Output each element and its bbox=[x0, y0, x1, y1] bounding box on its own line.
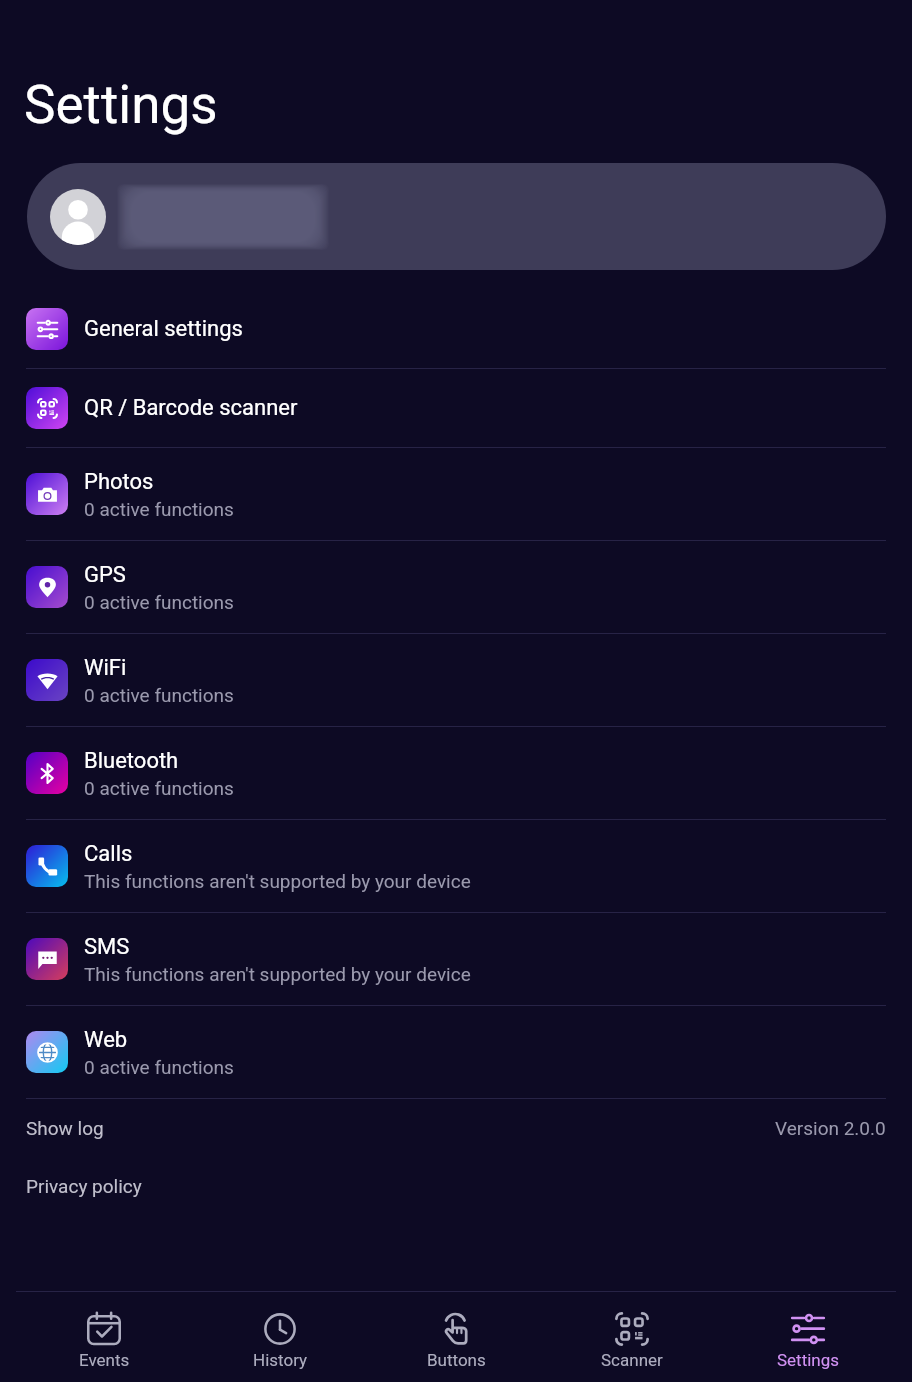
button[interactable]: GPS bbox=[0, 541, 912, 633]
staticText: Show log bbox=[26, 1117, 104, 1139]
staticText: Privacy policy bbox=[26, 1175, 142, 1197]
staticText: Web bbox=[84, 1027, 128, 1053]
button[interactable]: General settings bbox=[0, 290, 912, 368]
staticText: 0 active functions bbox=[84, 684, 234, 706]
staticText: Events bbox=[79, 1350, 130, 1370]
button[interactable]: History bbox=[192, 1292, 368, 1382]
staticText: General settings bbox=[84, 316, 243, 342]
button[interactable] bbox=[27, 163, 886, 270]
staticText: SMS bbox=[84, 934, 130, 960]
staticText: Version 2.0.0 bbox=[775, 1117, 886, 1139]
button[interactable]: Photos bbox=[0, 448, 912, 540]
staticText: GPS bbox=[84, 562, 126, 588]
button[interactable]: Privacy policy bbox=[26, 1175, 142, 1197]
button[interactable]: QR / Barcode scanner bbox=[0, 369, 912, 447]
button[interactable]: Buttons bbox=[368, 1292, 544, 1382]
staticText: Settings bbox=[777, 1350, 840, 1370]
staticText: Photos bbox=[84, 469, 154, 495]
button[interactable]: Settings bbox=[720, 1292, 896, 1382]
staticText: Bluetooth bbox=[84, 748, 179, 774]
staticText: Buttons bbox=[427, 1350, 486, 1370]
button[interactable]: Show log bbox=[26, 1117, 104, 1139]
staticText: QR / Barcode scanner bbox=[84, 395, 298, 421]
staticText: 0 active functions bbox=[84, 777, 234, 799]
button[interactable]: Scanner bbox=[544, 1292, 720, 1382]
button[interactable]: Bluetooth bbox=[0, 727, 912, 819]
staticText: This functions aren't supported by your … bbox=[84, 870, 471, 892]
button[interactable]: Events bbox=[16, 1292, 192, 1382]
staticText: Calls bbox=[84, 841, 133, 867]
staticText: 0 active functions bbox=[84, 1056, 234, 1078]
button[interactable]: SMS bbox=[0, 913, 912, 1005]
staticText: 0 active functions bbox=[84, 498, 234, 520]
button[interactable]: Web bbox=[0, 1006, 912, 1098]
button[interactable]: Calls bbox=[0, 820, 912, 912]
staticText: WiFi bbox=[84, 655, 127, 681]
button[interactable]: WiFi bbox=[0, 634, 912, 726]
staticText: This functions aren't supported by your … bbox=[84, 963, 471, 985]
staticText: Settings bbox=[24, 74, 218, 136]
staticText: History bbox=[253, 1350, 308, 1370]
staticText: Scanner bbox=[601, 1350, 663, 1370]
staticText: 0 active functions bbox=[84, 591, 234, 613]
